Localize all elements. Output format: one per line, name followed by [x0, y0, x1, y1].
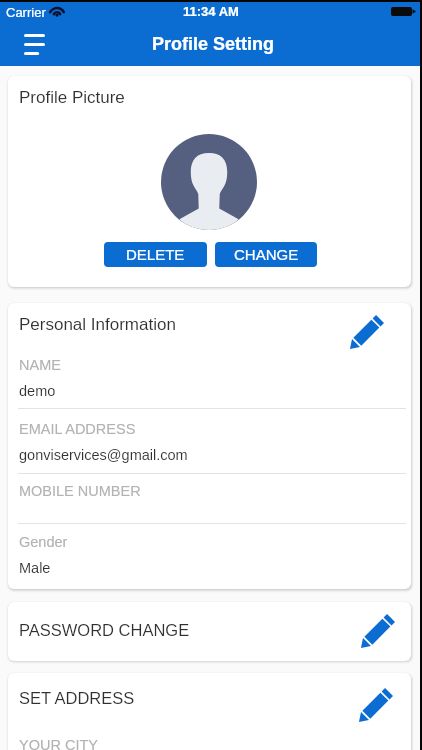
staticText: EMAIL ADDRESS [19, 421, 136, 437]
staticText: Carrier [6, 5, 46, 20]
staticText: 11:34 AM [183, 4, 239, 19]
button[interactable]: CHANGE [215, 242, 317, 267]
staticText: Profile Setting [152, 34, 275, 54]
staticText: Profile Picture [19, 88, 125, 107]
staticText: Gender [19, 534, 68, 550]
staticText: YOUR CITY [19, 737, 98, 750]
staticText: SET ADDRESS [19, 689, 135, 707]
staticText: CHANGE [234, 246, 299, 263]
staticText: gonviservices@gmail.com [19, 447, 188, 463]
button[interactable]: DELETE [104, 242, 207, 267]
button[interactable]: Edit address [355, 688, 393, 726]
staticText: Personal Information [19, 315, 176, 334]
staticText: NAME [19, 357, 61, 373]
button[interactable]: Edit personal information [346, 315, 384, 353]
button[interactable]: Menu [18, 28, 51, 60]
staticText: MOBILE NUMBER [19, 483, 141, 499]
staticText: PASSWORD CHANGE [19, 621, 190, 639]
staticText: demo [19, 383, 56, 399]
button[interactable]: PASSWORD CHANGE [8, 602, 411, 661]
staticText: Male [19, 560, 51, 576]
button[interactable]: Edit password [357, 614, 395, 652]
staticText: DELETE [126, 246, 185, 263]
